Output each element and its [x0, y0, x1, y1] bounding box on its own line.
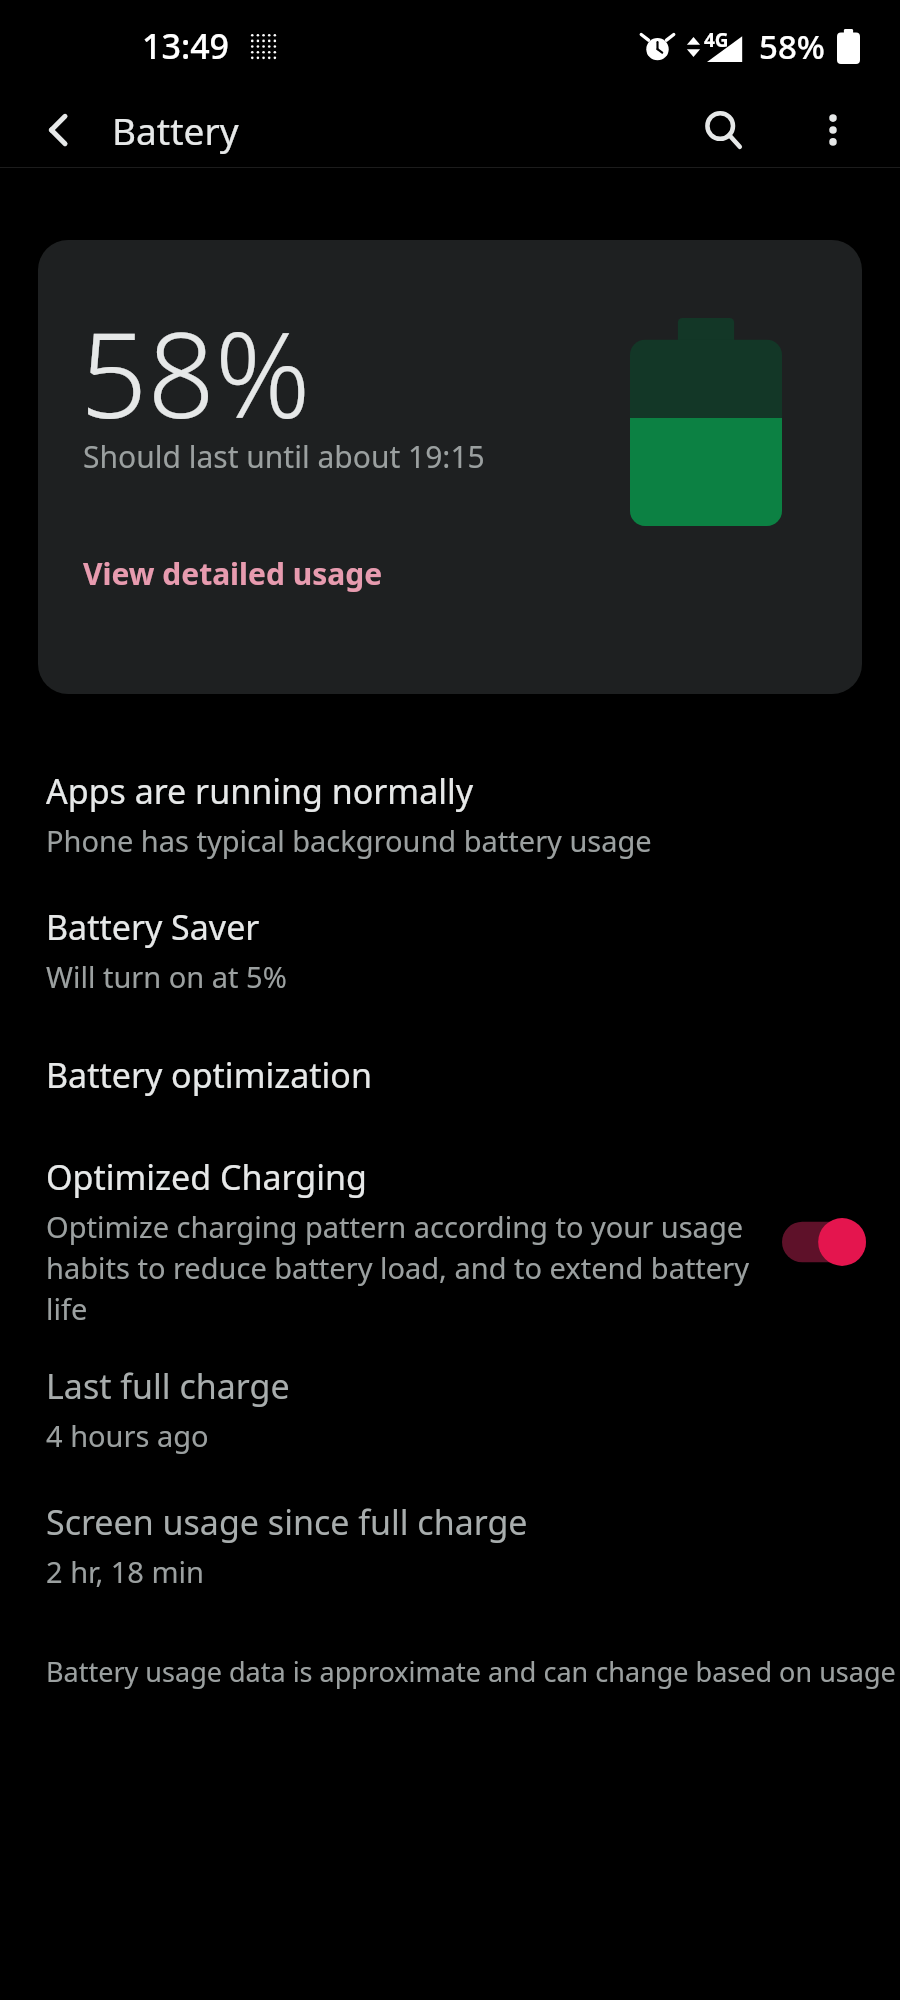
staticText: 4 hours ago	[46, 1416, 209, 1455]
staticText: 58%	[759, 24, 825, 69]
staticText: Last full charge	[46, 1363, 290, 1409]
button[interactable]: Apps are running normally	[0, 768, 900, 860]
button[interactable]: Battery Saver	[0, 904, 900, 996]
staticText: 58%	[80, 292, 311, 453]
staticText: 2 hr, 18 min	[46, 1552, 204, 1591]
button[interactable]: Optimized Charging	[0, 1154, 900, 1329]
staticText: Phone has typical background battery usa…	[46, 821, 652, 860]
button[interactable]: 58%	[38, 240, 862, 694]
staticText: Optimize charging pattern according to y…	[46, 1207, 774, 1329]
staticText: Apps are running normally	[46, 768, 474, 814]
button[interactable]: Battery optimization	[0, 1052, 900, 1098]
button[interactable]: View detailed usage	[83, 553, 383, 594]
staticText: 4G	[704, 27, 729, 53]
button[interactable]: Back	[24, 94, 96, 166]
staticText: Optimized Charging	[46, 1154, 367, 1200]
staticText: 13:49	[142, 23, 230, 69]
button[interactable]: Search	[686, 93, 760, 167]
button[interactable]: Last full charge	[0, 1363, 900, 1455]
staticText: Should last until about 19:15	[83, 436, 485, 477]
button[interactable]: More options	[796, 93, 870, 167]
staticText: Battery	[112, 105, 239, 155]
staticText: Will turn on at 5%	[46, 957, 287, 996]
button[interactable]: Screen usage since full charge	[0, 1499, 900, 1591]
button[interactable]: Optimized Charging toggle	[782, 1216, 866, 1268]
staticText: Battery usage data is approximate and ca…	[46, 1653, 896, 1690]
staticText: Battery optimization	[46, 1052, 372, 1098]
staticText: Battery Saver	[46, 904, 260, 950]
staticText: Screen usage since full charge	[46, 1499, 528, 1545]
